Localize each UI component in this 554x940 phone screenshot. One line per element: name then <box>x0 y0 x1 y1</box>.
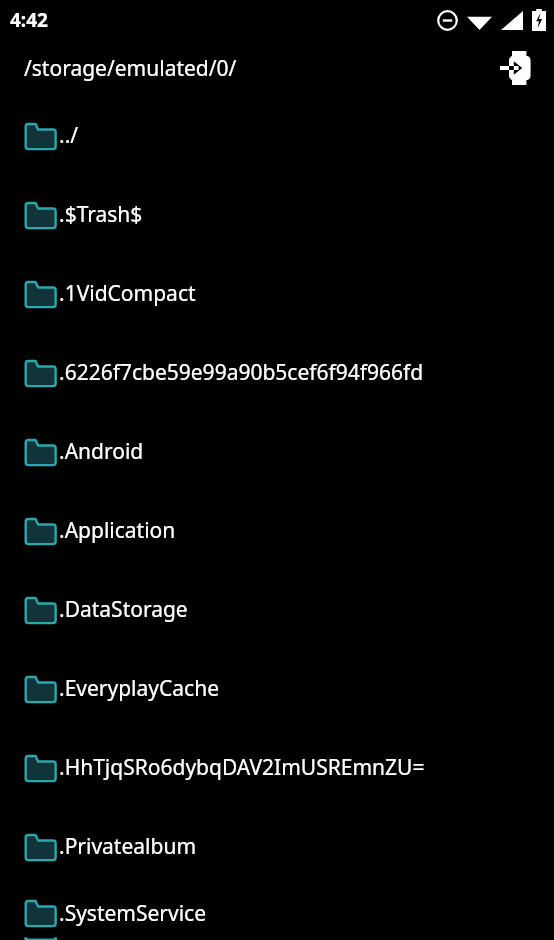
staticText: 4:42 <box>10 7 48 33</box>
staticText: .$Trash$ <box>59 200 143 229</box>
button[interactable]: .1VidCompact <box>0 254 554 333</box>
staticText: .Android <box>59 437 144 466</box>
staticText: ../ <box>59 121 79 150</box>
staticText: .SystemService <box>59 899 207 928</box>
staticText: .EveryplayCache <box>59 674 219 703</box>
button[interactable]: .6226f7cbe59e99a90b5cef6f94f966fd <box>0 333 554 412</box>
button[interactable]: .Privatealbum <box>0 807 554 886</box>
button[interactable]: Send to watch <box>496 46 540 90</box>
button[interactable]: .Application <box>0 491 554 570</box>
button[interactable]: .HhTjqSRo6dybqDAV2ImUSREmnZU= <box>0 728 554 807</box>
button[interactable]: .$Trash$ <box>0 175 554 254</box>
button[interactable]: .DataStorage <box>0 570 554 649</box>
button[interactable]: .EveryplayCache <box>0 649 554 728</box>
staticText: .Privatealbum <box>59 832 197 861</box>
button[interactable]: ../ <box>0 96 554 175</box>
button[interactable]: .Android <box>0 412 554 491</box>
staticText: .DataStorage <box>59 595 188 624</box>
staticText: .HhTjqSRo6dybqDAV2ImUSREmnZU= <box>59 753 425 782</box>
staticText: .1VidCompact <box>59 279 196 308</box>
staticText: .6226f7cbe59e99a90b5cef6f94f966fd <box>59 358 424 387</box>
button[interactable]: .SystemService <box>0 886 554 940</box>
staticText: /storage/emulated/0/ <box>24 54 237 83</box>
staticText: .Application <box>59 516 176 545</box>
